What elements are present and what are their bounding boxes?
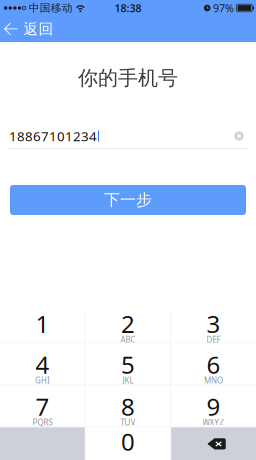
staticText: 2 <box>121 308 135 340</box>
staticText: 6 <box>207 348 221 380</box>
button[interactable]: 返回 <box>0 14 63 44</box>
staticText: GHI <box>35 375 50 386</box>
button[interactable]: 9 <box>171 385 256 427</box>
button[interactable]: 2 <box>86 300 170 343</box>
button[interactable]: 5 <box>86 343 170 385</box>
staticText: 4 <box>35 348 49 380</box>
staticText: 97% <box>213 1 234 15</box>
staticText: WXYZ <box>203 417 225 428</box>
staticText: TUV <box>120 417 135 428</box>
staticText: 9 <box>207 390 221 422</box>
staticText: 返回 <box>23 20 53 38</box>
staticText: 18:38 <box>114 1 141 15</box>
staticText: 18867101234 <box>9 127 97 145</box>
button[interactable]: 下一步 <box>10 185 246 215</box>
button[interactable]: Delete <box>171 427 256 460</box>
button[interactable]: 8 <box>86 385 170 427</box>
button[interactable]: Clear <box>231 128 247 144</box>
staticText: 7 <box>35 390 49 422</box>
staticText: MNO <box>204 375 223 386</box>
button[interactable]: 7 <box>0 385 85 427</box>
staticText: 你的手机号 <box>78 66 178 90</box>
button[interactable]: 0 <box>86 427 170 460</box>
staticText: ABC <box>120 334 135 345</box>
staticText: 0 <box>121 425 135 457</box>
staticText: DEF <box>207 334 221 345</box>
staticText: 8 <box>121 390 135 422</box>
staticText: 3 <box>207 308 221 340</box>
staticText: PQRS <box>32 417 52 428</box>
button[interactable]: 1 <box>0 300 85 343</box>
staticText: JKL <box>122 375 133 386</box>
staticText: 5 <box>121 348 135 380</box>
button[interactable]: 6 <box>171 343 256 385</box>
button[interactable]: 3 <box>171 300 256 343</box>
button[interactable]: 4 <box>0 343 85 385</box>
staticText: 下一步 <box>104 190 152 210</box>
staticText: 中国移动 <box>29 1 73 14</box>
staticText: 1 <box>35 308 49 340</box>
